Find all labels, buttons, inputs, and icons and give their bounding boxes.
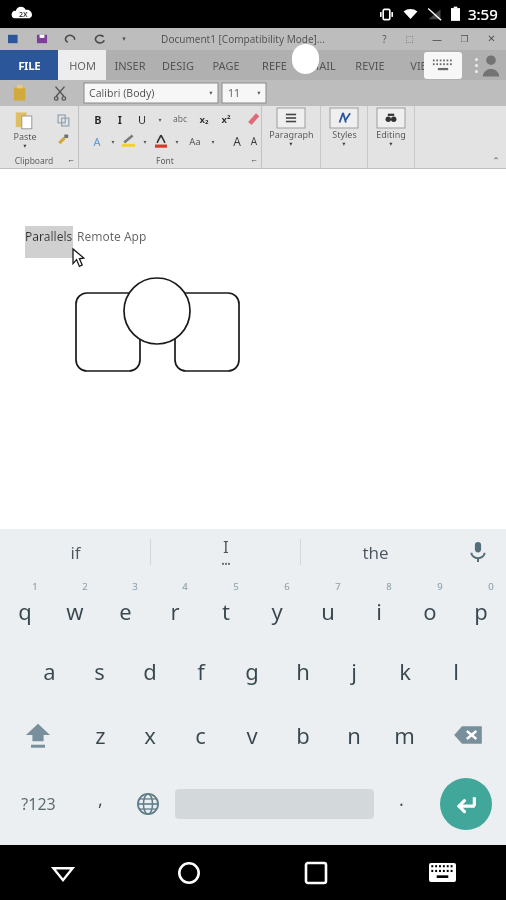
button[interactable]: s: [74, 639, 124, 703]
button[interactable]: I: [151, 529, 300, 575]
button[interactable]: f: [175, 639, 226, 703]
button[interactable]: Paste: [0, 110, 50, 150]
staticText: REVIE: [355, 58, 385, 73]
staticText: A: [87, 134, 107, 149]
button[interactable]: 6: [251, 575, 302, 639]
staticText: c: [195, 720, 206, 750]
staticText: 2X: [19, 10, 28, 20]
button[interactable]: l: [430, 639, 481, 703]
staticText: Aa: [183, 135, 207, 148]
button[interactable]: HOM: [58, 50, 106, 80]
button[interactable]: 11: [222, 83, 266, 103]
button[interactable]: Hide keyboard: [0, 845, 126, 900]
staticText: 3:59: [468, 4, 498, 24]
button[interactable]: Shift: [0, 703, 75, 767]
staticText: U: [131, 112, 153, 127]
button[interactable]: Switch keyboard: [379, 845, 506, 900]
staticText: g: [245, 656, 259, 686]
staticText: 9: [437, 580, 443, 593]
staticText: ⌐: [251, 157, 257, 165]
button[interactable]: DESIG: [154, 50, 202, 80]
staticText: ⌃: [492, 156, 500, 166]
button[interactable]: Home: [126, 845, 252, 900]
button[interactable]: 2: [50, 575, 100, 639]
button[interactable]: h: [277, 639, 328, 703]
button[interactable]: 5: [200, 575, 251, 639]
button[interactable]: 8: [353, 575, 404, 639]
button[interactable]: Styles: [321, 106, 367, 168]
staticText: A: [227, 133, 247, 149]
staticText: ▾: [107, 138, 119, 145]
staticText: ▾: [257, 89, 261, 97]
button[interactable]: a: [24, 639, 74, 703]
staticText: 3: [132, 580, 138, 593]
button[interactable]: z: [75, 703, 125, 767]
button[interactable]: 3: [100, 575, 150, 639]
button[interactable]: 0: [455, 575, 506, 639]
staticText: the: [362, 541, 389, 564]
staticText: j: [351, 656, 357, 686]
button[interactable]: v: [226, 703, 277, 767]
staticText: Clipboard: [0, 155, 68, 167]
staticText: abc: [167, 113, 193, 125]
staticText: B: [87, 112, 109, 127]
button[interactable]: g: [226, 639, 277, 703]
button[interactable]: VIE: [394, 50, 442, 80]
button[interactable]: 7: [302, 575, 353, 639]
button[interactable]: d: [124, 639, 175, 703]
button[interactable]: c: [175, 703, 226, 767]
button[interactable]: ,: [76, 767, 124, 841]
staticText: ⌐: [68, 157, 74, 165]
staticText: 6: [284, 580, 290, 593]
staticText: Paste: [13, 130, 37, 142]
button[interactable]: REFE: [250, 50, 298, 80]
button[interactable]: ?123: [0, 767, 76, 841]
button[interactable]: Account: [479, 53, 503, 77]
staticText: d: [143, 656, 157, 686]
staticText: if: [70, 541, 81, 564]
staticText: b: [296, 720, 310, 750]
staticText: ▾: [23, 142, 27, 150]
button[interactable]: .: [377, 767, 425, 841]
staticText: h: [296, 656, 310, 686]
staticText: 2: [82, 580, 88, 593]
staticText: x: [144, 720, 156, 750]
button[interactable]: 9: [404, 575, 455, 639]
button[interactable]: Change language: [124, 767, 172, 841]
button[interactable]: 1: [0, 575, 50, 639]
button[interactable]: m: [379, 703, 430, 767]
staticText: w: [66, 596, 84, 626]
button[interactable]: Enter: [440, 778, 492, 830]
staticText: MAIL: [309, 58, 336, 73]
button[interactable]: if: [0, 529, 150, 575]
button[interactable]: 4: [150, 575, 200, 639]
button[interactable]: x: [125, 703, 175, 767]
button[interactable]: Recent apps: [252, 845, 379, 900]
staticText: ▾: [139, 138, 151, 145]
button[interactable]: j: [328, 639, 379, 703]
button[interactable]: REVIE: [346, 50, 394, 80]
button[interactable]: k: [379, 639, 430, 703]
button[interactable]: PAGE: [202, 50, 250, 80]
staticText: ▾: [209, 89, 213, 97]
button[interactable]: the: [301, 529, 450, 575]
staticText: z: [95, 720, 106, 750]
staticText: ▾: [153, 116, 167, 123]
staticText: e: [119, 596, 132, 626]
staticText: I: [109, 112, 131, 127]
button[interactable]: Show keyboard: [424, 52, 462, 79]
staticText: v: [246, 720, 258, 750]
button[interactable]: Backspace: [430, 703, 506, 767]
button[interactable]: FILE: [0, 50, 58, 80]
button[interactable]: Paragraph: [262, 106, 320, 168]
button[interactable]: MAIL: [298, 50, 346, 80]
staticText: a: [43, 656, 56, 686]
button[interactable]: Calibri (Body): [84, 83, 218, 103]
button[interactable]: INSER: [106, 50, 154, 80]
button[interactable]: Editing: [368, 106, 414, 168]
button[interactable]: Voice input: [450, 529, 506, 575]
button[interactable]: n: [328, 703, 379, 767]
staticText: 0: [488, 580, 494, 593]
button[interactable]: b: [277, 703, 328, 767]
